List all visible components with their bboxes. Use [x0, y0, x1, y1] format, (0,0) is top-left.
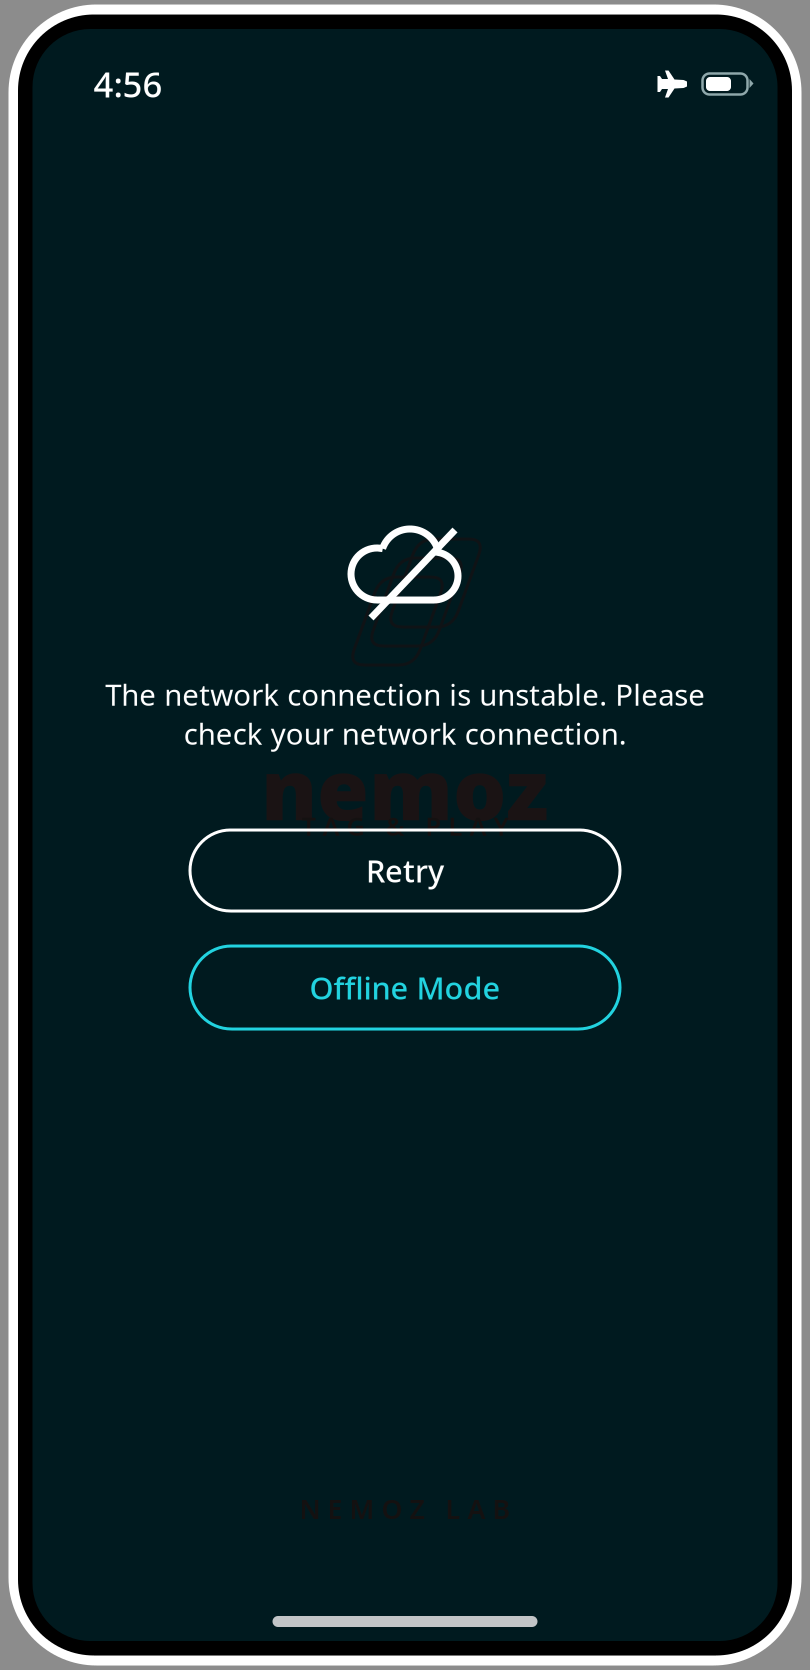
button[interactable]: Retry [190, 830, 620, 911]
staticText: 4:56 [93, 61, 162, 107]
staticText: The network connection is unstable. Plea… [105, 675, 705, 753]
staticText: nemoz [261, 732, 549, 843]
staticText: N E M O Z L A B [299, 1491, 510, 1526]
staticText: T A G & P L A Y [301, 809, 508, 843]
staticText: Offline Mode [309, 967, 500, 1008]
button[interactable]: Offline Mode [190, 946, 620, 1029]
staticText: Retry [366, 850, 444, 891]
